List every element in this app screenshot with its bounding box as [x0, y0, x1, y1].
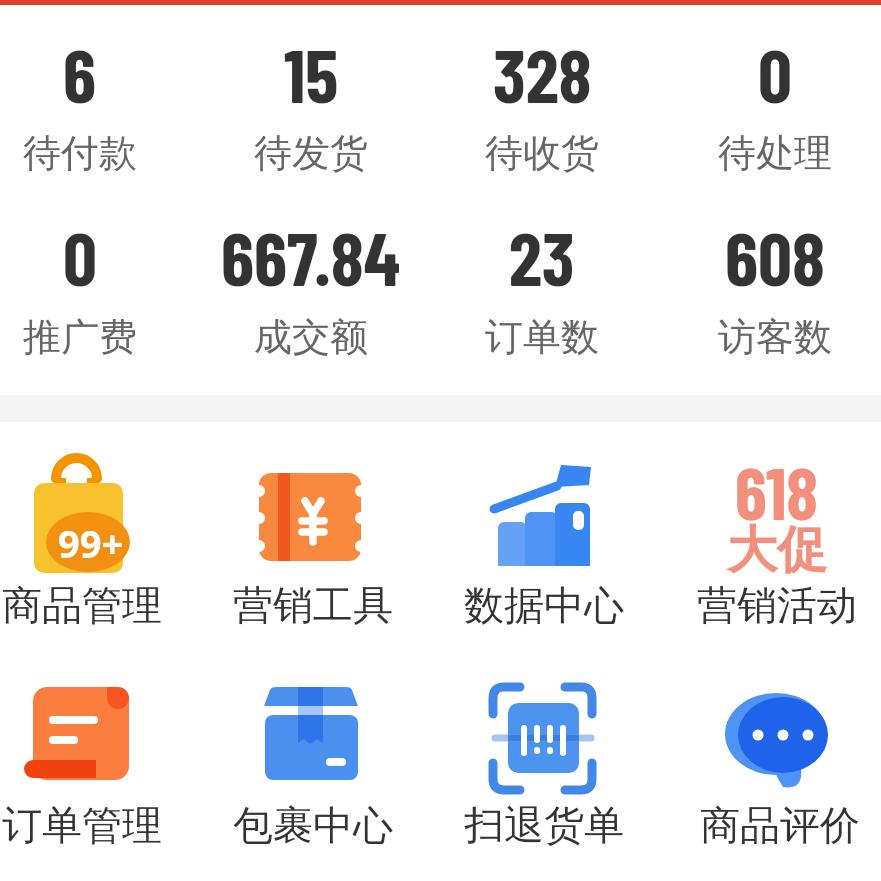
button[interactable]	[457, 450, 627, 650]
button[interactable]	[0, 210, 185, 370]
button[interactable]	[690, 450, 860, 650]
staticText: 大促	[727, 519, 827, 582]
button[interactable]	[0, 25, 185, 185]
button[interactable]	[0, 450, 165, 650]
staticText: 数据中心	[464, 580, 624, 630]
staticText: 营销活动	[697, 580, 857, 630]
staticText: 扫退货单	[464, 800, 624, 850]
staticText: 包裹中心	[233, 800, 393, 850]
button[interactable]	[670, 25, 880, 185]
staticText: 营销工具	[233, 580, 393, 630]
staticText: 成交额	[254, 313, 368, 361]
button[interactable]	[437, 210, 647, 370]
staticText: 访客数	[718, 313, 832, 361]
staticText: 订单数	[485, 313, 599, 361]
staticText: 订单管理	[2, 800, 162, 850]
button[interactable]	[0, 660, 165, 860]
staticText: 待付款	[23, 129, 137, 177]
staticText: 商品评价	[700, 800, 860, 850]
button[interactable]	[437, 25, 647, 185]
staticText: 15	[284, 28, 339, 118]
staticText: 23	[509, 211, 575, 301]
button[interactable]	[226, 660, 396, 860]
button[interactable]	[693, 660, 863, 860]
button[interactable]	[670, 210, 880, 370]
staticText: 0	[758, 28, 792, 118]
staticText: 99+	[58, 517, 124, 569]
staticText: 667.84	[221, 211, 401, 301]
staticText: 待收货	[485, 129, 599, 177]
staticText: 608	[725, 211, 825, 301]
staticText: 6	[63, 28, 97, 118]
button[interactable]	[206, 210, 416, 370]
button[interactable]	[206, 25, 416, 185]
button[interactable]	[226, 450, 396, 650]
staticText: 推广费	[23, 313, 137, 361]
staticText: 0	[63, 211, 97, 301]
staticText: 待发货	[254, 129, 368, 177]
staticText: 618	[735, 448, 819, 534]
staticText: 待处理	[718, 129, 832, 177]
staticText: 商品管理	[2, 580, 162, 630]
button[interactable]	[457, 660, 627, 860]
staticText: 328	[493, 28, 592, 118]
